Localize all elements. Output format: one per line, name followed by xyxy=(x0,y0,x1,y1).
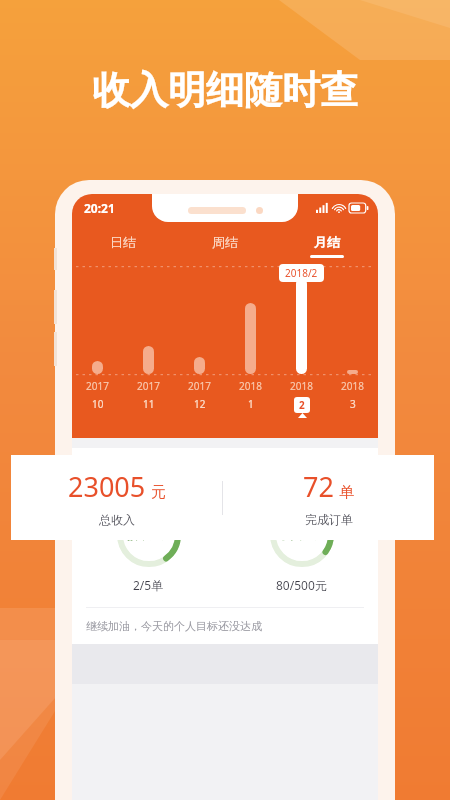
staticText: 2017 xyxy=(86,379,109,393)
button[interactable]: 2018/2 xyxy=(276,264,327,434)
staticText: 单 xyxy=(339,483,354,502)
staticText: 收入目标 xyxy=(280,528,324,542)
button[interactable]: 周结 xyxy=(174,232,276,257)
button[interactable]: 2017 xyxy=(123,264,174,434)
button[interactable]: 2017 xyxy=(72,264,123,434)
staticText: 2018 xyxy=(290,379,313,393)
staticText: 10 xyxy=(92,397,104,411)
staticText: 接单目标 xyxy=(127,528,171,542)
staticText: 2017 xyxy=(188,379,211,393)
staticText: 日结 xyxy=(110,234,136,250)
staticText: 2018 xyxy=(239,379,262,393)
staticText: 72 xyxy=(303,468,334,505)
staticText: 3 xyxy=(350,397,356,411)
button[interactable]: 2018 xyxy=(327,264,378,434)
button[interactable]: 月结 xyxy=(276,232,378,260)
button[interactable]: 收入目标 xyxy=(225,489,378,607)
button[interactable]: 2018 xyxy=(225,264,276,434)
staticText: 12 xyxy=(194,397,206,411)
staticText: 1 xyxy=(248,397,254,411)
staticText: 11 xyxy=(143,397,155,411)
button[interactable]: 日结 xyxy=(72,232,174,257)
button[interactable]: 23005 xyxy=(11,455,222,540)
staticText: 继续加油，今天的个人目标还没达成 xyxy=(86,619,262,633)
staticText: 元 xyxy=(151,483,166,502)
staticText: 2018/2 xyxy=(285,266,318,280)
staticText: 完成订单 xyxy=(305,512,353,527)
staticText: 月结 xyxy=(314,234,340,250)
button[interactable]: 72 xyxy=(223,455,434,540)
staticText: 2/5单 xyxy=(133,577,164,593)
button[interactable]: 2017 xyxy=(174,264,225,434)
staticText: 20:21 xyxy=(84,200,115,216)
staticText: 2018 xyxy=(341,379,364,393)
staticText: 23005 xyxy=(68,468,146,505)
button[interactable]: 接单目标 xyxy=(72,489,225,607)
staticText: 2017 xyxy=(137,379,160,393)
staticText: 总收入 xyxy=(99,512,135,527)
staticText: 收入明细随时查 xyxy=(92,66,358,114)
staticText: 周结 xyxy=(212,234,238,250)
staticText: 80/500元 xyxy=(276,577,327,593)
staticText: 2 xyxy=(299,398,305,412)
